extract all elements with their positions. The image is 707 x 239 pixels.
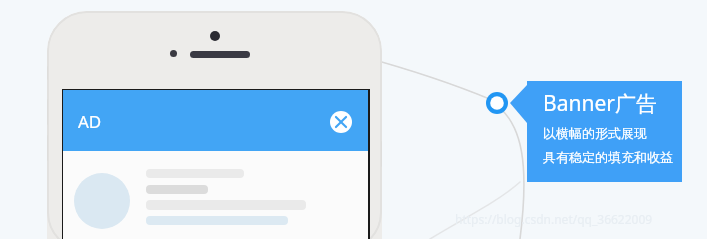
staticText: 以横幅的形式展现 bbox=[543, 125, 647, 141]
other: Banner ad marker bbox=[486, 92, 508, 114]
button[interactable]: Banner广告 bbox=[527, 81, 682, 182]
staticText: AD bbox=[78, 110, 102, 133]
staticText: Banner广告 bbox=[543, 89, 657, 118]
button[interactable]: Close ad bbox=[330, 111, 352, 133]
button[interactable]: AD bbox=[63, 90, 368, 151]
staticText: https://blog.csdn.net/qq_36622009 bbox=[455, 211, 653, 227]
staticText: 具有稳定的填充和收益 bbox=[543, 149, 673, 165]
